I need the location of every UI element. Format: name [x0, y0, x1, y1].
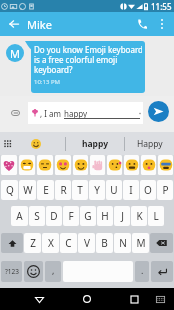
button[interactable]: U	[106, 180, 122, 200]
staticText: 11:55	[151, 1, 172, 12]
button[interactable]: Back	[28, 288, 50, 310]
staticText: R	[60, 183, 67, 197]
button[interactable]: Home	[76, 288, 98, 310]
button[interactable]: V	[78, 233, 95, 253]
button[interactable]: Back	[0, 12, 27, 36]
staticText: 10:13 PM	[34, 78, 60, 86]
button[interactable]: F	[63, 206, 79, 226]
button[interactable]: T	[72, 180, 88, 200]
button[interactable]: M	[132, 233, 149, 253]
button[interactable]: Comma	[45, 261, 61, 282]
staticText: happy	[64, 108, 88, 119]
button[interactable]: D	[46, 206, 62, 226]
staticText: happy	[82, 138, 109, 150]
staticText: Mike	[27, 17, 52, 32]
button[interactable]: Backspace	[150, 233, 173, 253]
staticText: S	[34, 209, 40, 223]
button[interactable]: More options	[153, 15, 171, 33]
staticText: H	[101, 209, 109, 223]
button[interactable]: Recent apps	[123, 288, 145, 310]
button[interactable]: Z	[24, 233, 41, 253]
button[interactable]: W	[19, 180, 36, 200]
staticText: ?123	[5, 267, 19, 276]
button[interactable]: Emoji	[25, 132, 46, 155]
button[interactable]: Y	[89, 180, 105, 200]
button[interactable]: B	[96, 233, 113, 253]
staticText: ,	[52, 264, 55, 276]
button[interactable]: Symbols	[1, 261, 22, 282]
staticText: V	[84, 236, 90, 250]
button[interactable]: Emoji	[124, 155, 139, 175]
staticText: B	[101, 236, 108, 250]
staticText: O	[144, 183, 152, 197]
staticText: Q	[6, 183, 14, 197]
button[interactable]: S	[29, 206, 45, 226]
button[interactable]: Emoji	[37, 155, 53, 175]
staticText: Y	[94, 183, 100, 197]
button[interactable]: I	[123, 180, 139, 200]
button[interactable]: Emoji	[19, 155, 35, 175]
button[interactable]: Q	[1, 180, 18, 200]
staticText: T	[77, 183, 83, 197]
staticText: L	[153, 209, 159, 223]
button[interactable]: O	[140, 180, 156, 200]
button[interactable]: L	[148, 206, 164, 226]
button[interactable]: X	[42, 233, 59, 253]
staticText: X	[48, 236, 54, 250]
staticText: G	[84, 209, 92, 223]
button[interactable]: R	[55, 180, 71, 200]
button[interactable]: Happy	[125, 132, 174, 155]
button[interactable]: Hide keyboard	[149, 288, 171, 310]
staticText: Z	[30, 236, 36, 250]
staticText: M	[10, 46, 20, 61]
button[interactable]: J	[114, 206, 130, 226]
staticText: .	[141, 264, 144, 276]
button[interactable]: Enter	[151, 261, 173, 282]
staticText: I	[129, 183, 133, 197]
staticText: W	[23, 183, 33, 197]
button[interactable]: Emoji	[90, 155, 105, 175]
staticText: C	[65, 236, 72, 250]
staticText: K	[136, 209, 143, 223]
staticText: A	[16, 209, 23, 223]
button[interactable]: E	[37, 180, 54, 200]
button[interactable]: Call	[131, 13, 153, 35]
button[interactable]: Emoji	[158, 155, 173, 175]
staticText: F	[68, 209, 74, 223]
staticText: Happy	[137, 138, 163, 150]
button[interactable]: C	[60, 233, 77, 253]
button[interactable]: Keyboard apps	[0, 132, 16, 155]
button[interactable]: A	[11, 206, 28, 226]
button[interactable]: happy	[66, 132, 124, 155]
button[interactable]: G	[80, 206, 96, 226]
button[interactable]: Emoji	[55, 155, 71, 175]
staticText: U	[110, 183, 118, 197]
button[interactable]: Attach	[4, 102, 26, 124]
staticText: J	[121, 209, 124, 223]
staticText: M	[136, 236, 146, 250]
staticText: E	[43, 183, 49, 197]
staticText: N	[119, 236, 127, 250]
button[interactable]: Emoji	[24, 261, 43, 282]
button[interactable]: Period	[135, 261, 149, 282]
button[interactable]: N	[114, 233, 131, 253]
button[interactable]: H	[97, 206, 113, 226]
button[interactable]: Emoji	[107, 155, 122, 175]
button[interactable]: Emoji	[73, 155, 88, 175]
button[interactable]: Send	[148, 101, 169, 122]
staticText: Do you know Emoji keyboard is a free col…	[34, 44, 142, 75]
button[interactable]: P	[157, 180, 173, 200]
button[interactable]: Emoji	[141, 155, 156, 175]
button[interactable]: Emoji	[1, 155, 17, 175]
button[interactable]: Shift	[1, 233, 23, 253]
button[interactable]: K	[131, 206, 147, 226]
staticText: P	[162, 183, 169, 197]
staticText: D	[50, 209, 58, 223]
staticText: , I am	[40, 108, 64, 119]
